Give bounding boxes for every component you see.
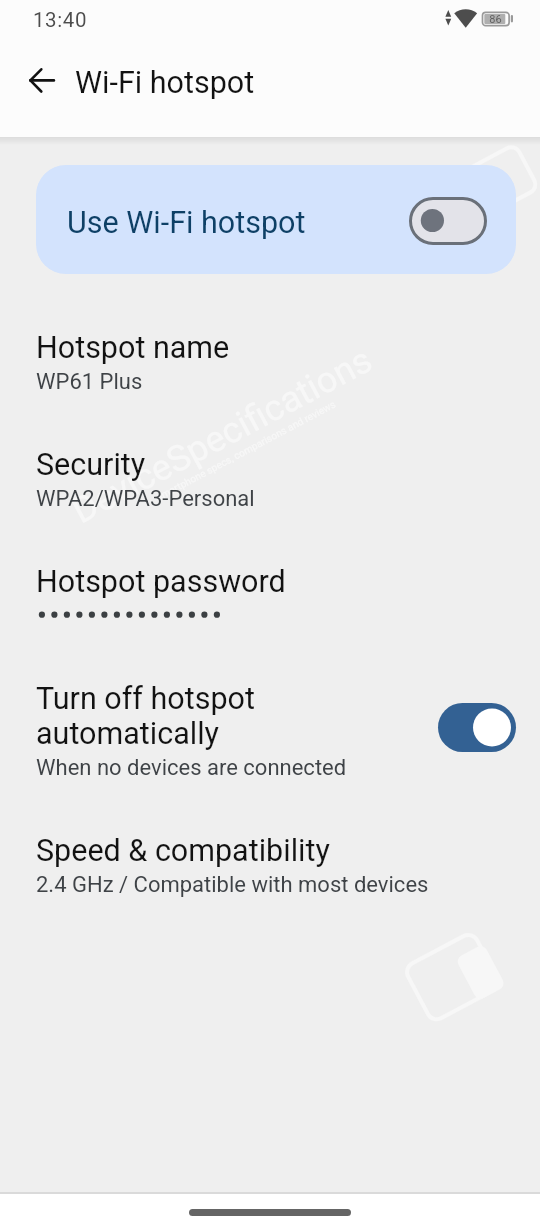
staticText: WPA2/WPA3-Personal <box>36 486 255 512</box>
button[interactable]: Hotspot name <box>36 330 540 392</box>
staticText: automatically <box>36 716 220 752</box>
staticText: Security <box>36 447 146 483</box>
button[interactable]: Security <box>36 447 540 509</box>
button[interactable]: Speed & compatibility <box>36 833 540 895</box>
button[interactable]: Back <box>18 57 66 105</box>
staticText: Use Wi-Fi hotspot <box>67 205 306 241</box>
staticText: 2.4 GHz / Compatible with most devices <box>36 872 429 898</box>
staticText: DeviceSpecifications <box>65 339 379 532</box>
staticText: 13:40 <box>33 8 88 32</box>
button[interactable]: Turn off hotspot <box>0 681 540 791</box>
button[interactable]: Hotspot password <box>0 564 540 629</box>
staticText: Wi-Fi hotspot <box>75 65 255 101</box>
staticText: Speed & compatibility <box>36 833 330 869</box>
button[interactable]: Turn off hotspot automatically toggle <box>438 703 516 752</box>
staticText: Turn off hotspot <box>36 681 255 717</box>
staticText: Hotspot name <box>36 330 230 366</box>
button[interactable]: Use Wi-Fi hotspot <box>36 165 516 274</box>
staticText: WP61 Plus <box>36 369 143 395</box>
staticText: 86 <box>489 13 502 26</box>
button[interactable]: Use Wi-Fi hotspot toggle <box>409 197 487 245</box>
staticText: When no devices are connected <box>36 755 347 781</box>
staticText: Hotspot password <box>36 564 286 600</box>
staticText: smartphone specs, comparisons and review… <box>155 399 338 504</box>
